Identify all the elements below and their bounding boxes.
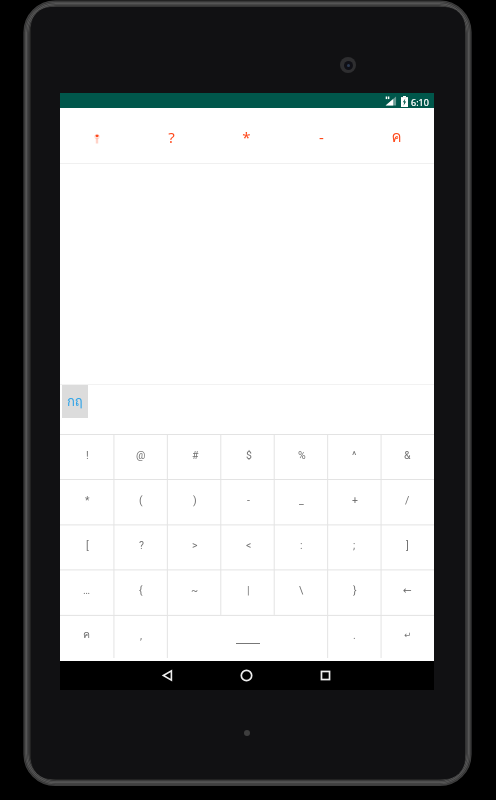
staticText: ?: [168, 127, 175, 147]
staticText: :: [300, 539, 303, 551]
button[interactable]: }: [328, 569, 381, 615]
staticText: -: [319, 127, 324, 147]
button[interactable]: [60, 108, 134, 163]
button[interactable]: ,: [114, 615, 168, 658]
button[interactable]: ?: [134, 108, 209, 163]
staticText: &: [404, 449, 411, 461]
button[interactable]: @: [114, 434, 168, 479]
button[interactable]: {: [114, 569, 168, 615]
staticText: }: [353, 584, 357, 596]
button[interactable]: -: [284, 108, 359, 163]
staticText: *: [242, 127, 251, 147]
button[interactable]: |: [222, 569, 275, 615]
staticText: ^: [352, 449, 357, 461]
staticText: %: [298, 449, 306, 461]
staticText: กฤ: [67, 391, 83, 412]
button[interactable]: $: [222, 434, 275, 479]
button[interactable]: :: [275, 524, 328, 569]
button[interactable]: -: [222, 479, 275, 524]
button[interactable]: *: [209, 108, 284, 163]
staticText: /: [405, 494, 410, 506]
staticText: $: [246, 449, 252, 461]
button[interactable]: ~: [168, 569, 222, 615]
staticText: |: [247, 584, 250, 596]
staticText: (: [139, 494, 143, 506]
button[interactable]: ): [168, 479, 222, 524]
staticText: {: [139, 584, 143, 596]
staticText: !: [86, 449, 89, 461]
staticText: \: [299, 584, 304, 596]
button[interactable]: ←: [381, 569, 434, 615]
button[interactable]: [: [60, 524, 114, 569]
button[interactable]: ค: [60, 615, 114, 658]
staticText: _: [299, 494, 304, 506]
button[interactable]: +: [328, 479, 381, 524]
button[interactable]: .: [328, 615, 381, 658]
staticText: #: [192, 449, 199, 461]
staticText: ค: [83, 626, 91, 643]
button[interactable]: !: [60, 434, 114, 479]
button[interactable]: Recents: [309, 661, 341, 690]
staticText: ;: [353, 539, 356, 551]
button[interactable]: Home: [230, 661, 262, 690]
button[interactable]: _: [275, 479, 328, 524]
button[interactable]: Space: [168, 615, 328, 658]
staticText: [: [86, 539, 89, 551]
staticText: ?: [139, 539, 144, 551]
button[interactable]: (: [114, 479, 168, 524]
staticText: ค: [391, 125, 402, 149]
staticText: >: [192, 539, 198, 551]
button[interactable]: &: [381, 434, 434, 479]
staticText: …: [83, 584, 91, 596]
button[interactable]: Back: [151, 661, 183, 690]
button[interactable]: /: [381, 479, 434, 524]
button[interactable]: ^: [328, 434, 381, 479]
button[interactable]: %: [275, 434, 328, 479]
staticText: ,: [140, 629, 143, 641]
button[interactable]: *: [60, 479, 114, 524]
button[interactable]: \: [275, 569, 328, 615]
button[interactable]: ?: [114, 524, 168, 569]
staticText: <: [246, 539, 252, 551]
staticText: @: [136, 449, 146, 461]
staticText: +: [352, 494, 358, 506]
staticText: ]: [406, 539, 409, 551]
staticText: ): [193, 494, 197, 506]
button[interactable]: #: [168, 434, 222, 479]
button[interactable]: Enter: [381, 615, 434, 658]
button[interactable]: >: [168, 524, 222, 569]
staticText: -: [247, 494, 250, 506]
button[interactable]: ค: [359, 108, 434, 163]
staticText: ←: [403, 584, 412, 596]
staticText: *: [85, 494, 90, 506]
button[interactable]: ;: [328, 524, 381, 569]
button[interactable]: ]: [381, 524, 434, 569]
staticText: ~: [191, 584, 199, 596]
staticText: .: [353, 629, 356, 641]
staticText: ↵: [404, 630, 412, 640]
button[interactable]: …: [60, 569, 114, 615]
button[interactable]: <: [222, 524, 275, 569]
staticText: 6:10: [411, 96, 429, 108]
